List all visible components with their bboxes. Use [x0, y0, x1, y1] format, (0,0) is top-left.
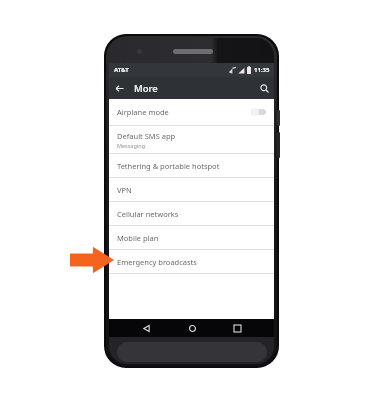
staticText: Emergency broadcasts [117, 257, 197, 267]
button[interactable]: VPN [109, 178, 274, 201]
button[interactable]: Tethering & portable hotspot [109, 154, 274, 177]
button[interactable]: Emergency broadcasts [109, 250, 274, 273]
staticText: Messaging [117, 142, 146, 149]
button[interactable]: Default SMS app [109, 126, 274, 153]
staticText: More [134, 82, 158, 95]
staticText: VPN [117, 185, 132, 195]
staticText: 11:35 [254, 66, 270, 74]
button[interactable]: Mobile plan [109, 226, 274, 249]
button[interactable]: Airplane mode [109, 99, 274, 125]
button[interactable]: Home [184, 320, 200, 336]
button[interactable]: Recent apps [229, 320, 245, 336]
staticText: Mobile plan [117, 233, 159, 243]
staticText: AT&T [114, 66, 129, 74]
staticText: Cellular networks [117, 209, 179, 219]
button[interactable]: Back [109, 78, 129, 98]
button[interactable]: Back [138, 320, 154, 336]
staticText: Airplane mode [117, 107, 169, 117]
other: Pointer to Emergency broadcasts [70, 245, 114, 275]
button[interactable]: Cellular networks [109, 202, 274, 225]
staticText: Tethering & portable hotspot [117, 161, 220, 171]
button[interactable]: Search [254, 78, 274, 98]
staticText: Default SMS app [117, 131, 176, 141]
